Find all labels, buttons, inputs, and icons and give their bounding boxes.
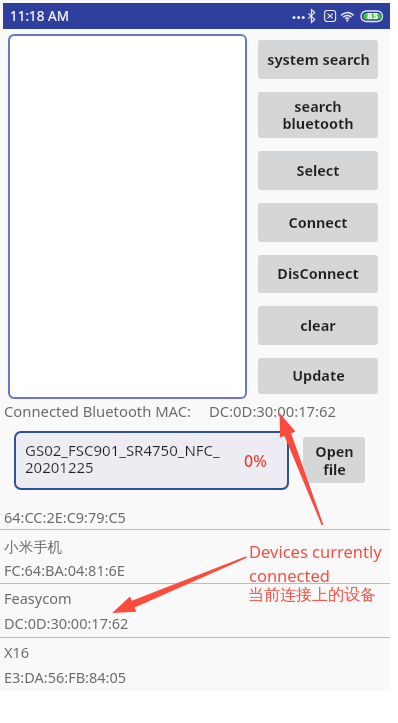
staticText: 小米手机	[4, 538, 62, 556]
staticText: system search	[267, 50, 370, 70]
staticText: 64:CC:2E:C9:79:C5	[4, 507, 126, 527]
button[interactable]: system search	[258, 40, 378, 79]
button[interactable]: search bluetooth	[258, 92, 378, 138]
staticText: DC:0D:30:00:17:62	[209, 401, 336, 421]
staticText: Update	[292, 366, 345, 386]
button[interactable]: Connect	[258, 203, 378, 242]
staticText: Connect	[288, 213, 348, 233]
staticText: 83	[367, 9, 378, 22]
staticText: 11:18 AM	[10, 7, 69, 25]
staticText: Connected Bluetooth MAC:	[4, 401, 192, 421]
staticText: search bluetooth	[282, 97, 354, 133]
staticText: FC:64:BA:04:81:6E	[4, 560, 125, 580]
staticText: Feasycom	[4, 588, 72, 608]
staticText: 当前连接上的设备	[248, 585, 376, 605]
staticText: GS02_FSC901_SR4750_NFC_ 20201225	[25, 440, 220, 477]
button[interactable]: Open file	[303, 437, 365, 483]
staticText: 0%	[244, 450, 267, 472]
button[interactable]: GS02_FSC901_SR4750_NFC_ 20201225	[14, 431, 289, 490]
staticText: clear	[300, 316, 336, 336]
staticText: E3:DA:56:FB:84:05	[4, 667, 127, 687]
staticText: X16	[4, 642, 30, 662]
staticText: Devices currently connected	[249, 540, 382, 587]
staticText: Open file	[315, 442, 354, 479]
button[interactable]: Select	[258, 151, 378, 190]
button[interactable]: X16	[0, 642, 390, 695]
staticText: DisConnect	[277, 264, 359, 284]
button[interactable]: 小米手机	[0, 538, 390, 591]
button[interactable]: Update	[258, 358, 378, 394]
button[interactable]	[8, 34, 247, 399]
staticText: DC:0D:30:00:17:62	[4, 613, 129, 633]
staticText: Select	[296, 161, 340, 181]
button[interactable]: Feasycom	[0, 588, 390, 641]
button[interactable]: DisConnect	[258, 255, 378, 293]
button[interactable]: clear	[258, 306, 378, 345]
